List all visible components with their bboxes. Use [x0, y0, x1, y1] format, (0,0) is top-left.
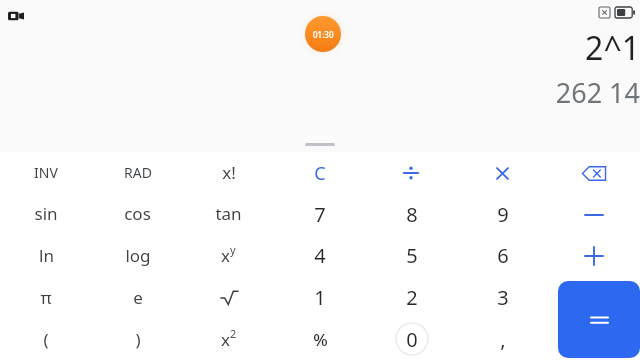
- button[interactable]: e: [92, 276, 183, 318]
- button[interactable]: C: [274, 152, 365, 194]
- button[interactable]: ln: [0, 234, 92, 276]
- staticText: 3: [497, 284, 509, 311]
- staticText: cos: [124, 202, 151, 225]
- staticText: tan: [215, 202, 242, 225]
- staticText: INV: [34, 163, 58, 182]
- button[interactable]: 4: [274, 235, 366, 276]
- button[interactable]: Screen recording: [6, 6, 26, 26]
- button[interactable]: ,: [457, 318, 548, 360]
- staticText: x: [221, 244, 230, 267]
- button[interactable]: 5: [366, 235, 457, 276]
- staticText: 9: [497, 201, 509, 228]
- button[interactable]: x: [183, 318, 274, 360]
- staticText: x!: [222, 161, 236, 184]
- button[interactable]: Backspace: [548, 152, 640, 194]
- staticText: e: [133, 286, 143, 309]
- staticText: 2: [406, 284, 418, 311]
- staticText: 01:30: [313, 29, 334, 40]
- button[interactable]: [456, 152, 548, 194]
- button[interactable]: 7: [274, 194, 366, 235]
- staticText: 2: [230, 326, 237, 341]
- button[interactable]: [548, 235, 640, 277]
- button[interactable]: RAD: [92, 152, 183, 193]
- staticText: (: [43, 328, 49, 351]
- button[interactable]: (: [0, 318, 92, 360]
- button[interactable]: tan: [183, 193, 274, 234]
- staticText: 262 14: [555, 74, 640, 111]
- button[interactable]: sin: [0, 193, 92, 234]
- staticText: y: [230, 242, 236, 257]
- button[interactable]: 1: [274, 276, 366, 318]
- staticText: sin: [34, 202, 58, 225]
- button[interactable]: cos: [92, 193, 183, 234]
- button[interactable]: 9: [457, 194, 548, 235]
- staticText: C: [314, 161, 326, 186]
- staticText: 8: [406, 201, 418, 228]
- staticText: 4: [314, 242, 326, 269]
- button[interactable]: [548, 194, 640, 235]
- button[interactable]: 2: [366, 276, 457, 318]
- button[interactable]: %: [274, 318, 366, 360]
- button[interactable]: Timer 01:30: [299, 10, 347, 58]
- button[interactable]: INV: [0, 152, 92, 193]
- staticText: x: [221, 328, 230, 351]
- button[interactable]: 6: [457, 235, 548, 276]
- staticText: 0: [406, 326, 418, 353]
- button[interactable]: log: [92, 234, 183, 276]
- staticText: ,: [500, 326, 506, 353]
- button[interactable]: x: [183, 234, 274, 276]
- staticText: 1: [314, 284, 326, 311]
- staticText: 7: [314, 201, 326, 228]
- button[interactable]: 8: [366, 194, 457, 235]
- staticText: ln: [39, 244, 54, 267]
- button[interactable]: [365, 152, 456, 194]
- button[interactable]: 3: [457, 276, 548, 318]
- button[interactable]: [183, 276, 274, 318]
- button[interactable]: π: [0, 276, 92, 318]
- staticText: 5: [406, 242, 418, 269]
- staticText: ): [135, 328, 141, 351]
- staticText: π: [40, 286, 52, 309]
- staticText: log: [125, 244, 151, 267]
- button[interactable]: 0: [366, 318, 457, 360]
- button[interactable]: Equals: [558, 281, 640, 358]
- staticText: %: [313, 328, 328, 351]
- button[interactable]: ): [92, 318, 183, 360]
- staticText: 6: [497, 242, 509, 269]
- button[interactable]: x!: [183, 152, 274, 193]
- staticText: 2^1: [585, 26, 640, 70]
- staticText: RAD: [124, 163, 152, 182]
